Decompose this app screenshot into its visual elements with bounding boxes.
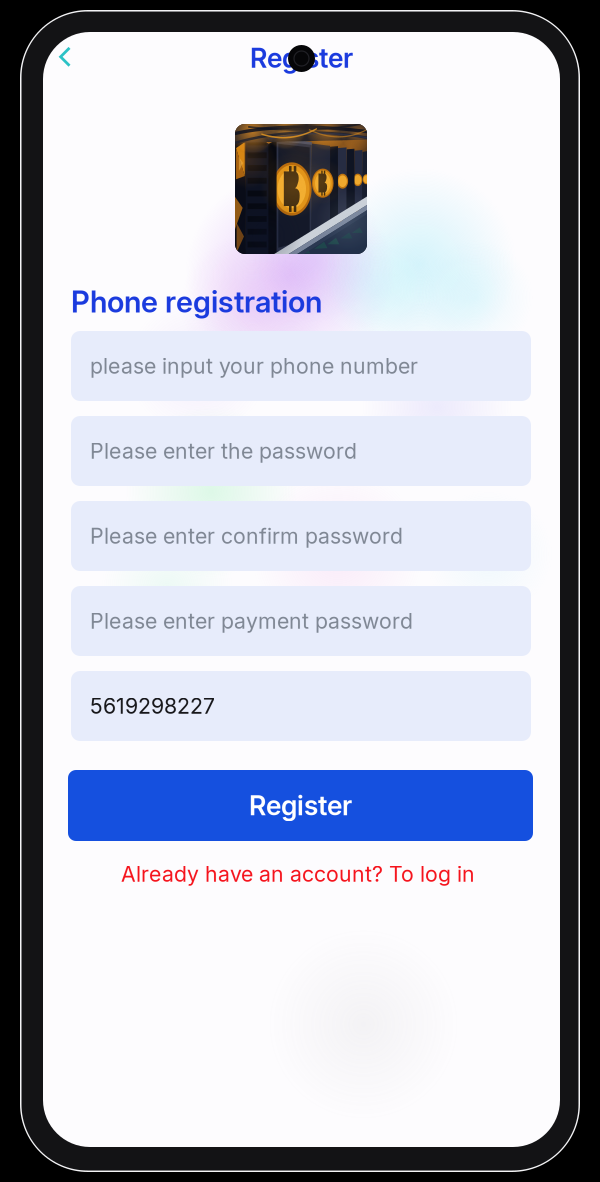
staticText: Already have an account? To log in: [121, 861, 475, 887]
button[interactable]: Back: [43, 37, 87, 77]
button[interactable]: please input your phone number: [71, 331, 531, 401]
staticText: Register: [250, 42, 353, 74]
button[interactable]: Register: [68, 770, 533, 841]
button[interactable]: Please enter confirm password: [71, 501, 531, 571]
button[interactable]: Please enter payment password: [71, 586, 531, 656]
staticText: Please enter the password: [90, 438, 357, 464]
staticText: Phone registration: [71, 284, 322, 319]
button[interactable]: Register: [43, 38, 560, 78]
button[interactable]: 5619298227: [71, 671, 531, 741]
staticText: Register: [249, 789, 352, 822]
button[interactable]: Already have an account? To log in: [63, 859, 533, 889]
staticText: Please enter confirm password: [90, 523, 403, 549]
staticText: please input your phone number: [90, 353, 418, 379]
staticText: Please enter payment password: [90, 608, 413, 634]
staticText: 5619298227: [90, 693, 215, 719]
button[interactable]: Please enter the password: [71, 416, 531, 486]
